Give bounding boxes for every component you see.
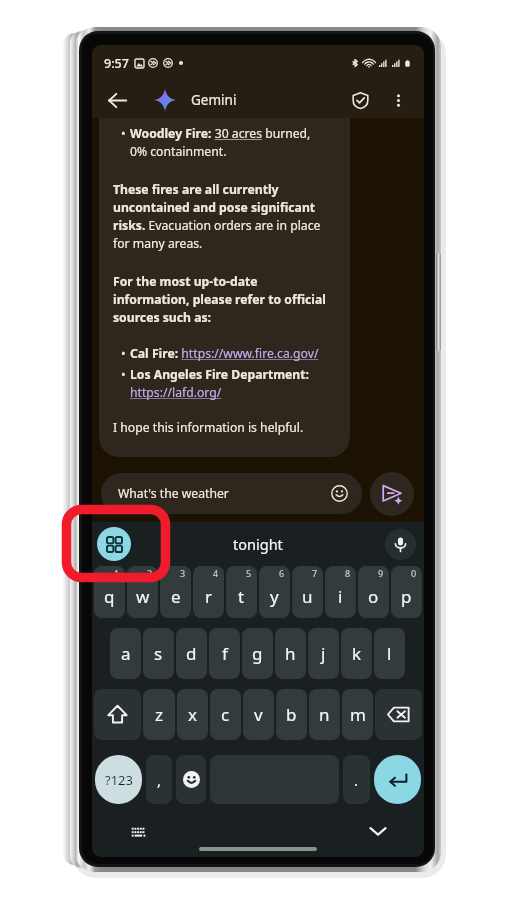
staticText: 1 (114, 567, 120, 579)
button[interactable]: Back (100, 83, 134, 117)
button[interactable]: v (243, 689, 274, 740)
staticText: • (121, 125, 126, 142)
staticText: 6 (279, 567, 285, 579)
staticText: u (302, 585, 313, 608)
staticText: 3 (180, 567, 186, 579)
staticText: n (319, 703, 330, 726)
button[interactable]: 1 (94, 566, 125, 618)
staticText: c (221, 703, 230, 726)
staticText: • (121, 345, 126, 362)
button[interactable]: . (343, 755, 370, 804)
staticText: Woodley Fire: 30 acres burned, 0% contai… (130, 125, 329, 160)
button[interactable]: s (143, 628, 174, 679)
button[interactable]: n (309, 689, 340, 740)
staticText: k (352, 642, 362, 665)
button[interactable]: 4 (193, 566, 224, 618)
staticText: Cal Fire: https://www.fire.ca.gov/ (130, 345, 319, 362)
staticText: I hope this information is helpful. (113, 419, 304, 436)
staticText: 5 (246, 567, 252, 579)
button[interactable]: j (308, 628, 339, 679)
staticText: j (321, 642, 326, 665)
staticText: 9 (378, 567, 384, 579)
staticText: h (285, 642, 296, 665)
staticText: l (387, 642, 392, 665)
button[interactable]: 2 (127, 566, 158, 618)
staticText: t (238, 585, 245, 608)
staticText: ?123 (105, 771, 133, 789)
button[interactable]: 5 (226, 566, 257, 618)
button[interactable]: Hide keyboard (366, 819, 390, 843)
staticText: z (155, 703, 163, 726)
staticText: w (136, 585, 150, 608)
staticText: i (338, 585, 343, 608)
staticText: a (121, 642, 131, 665)
staticText: 9:57 (104, 55, 129, 72)
button[interactable]: x (177, 689, 208, 740)
button[interactable]: Backspace (375, 689, 422, 740)
staticText: 7 (312, 567, 318, 579)
button[interactable]: Privacy shield (343, 83, 377, 117)
button[interactable]: a (110, 628, 141, 679)
button[interactable]: b (276, 689, 307, 740)
button[interactable]: 9 (358, 566, 389, 618)
button[interactable]: Emoji (176, 755, 206, 804)
staticText: • (121, 366, 126, 383)
button[interactable]: m (342, 689, 373, 740)
button[interactable]: Apps (97, 527, 131, 561)
button[interactable]: Shift (94, 689, 141, 740)
staticText: v (254, 703, 263, 726)
button[interactable]: c (210, 689, 241, 740)
staticText: 4 (213, 567, 219, 579)
staticText: d (186, 642, 197, 665)
button[interactable]: z (143, 689, 175, 740)
button[interactable]: 3 (160, 566, 191, 618)
button[interactable]: Send (370, 472, 414, 516)
staticText: b (286, 703, 297, 726)
staticText: m (350, 703, 366, 726)
button[interactable]: d (176, 628, 207, 679)
staticText: q (104, 585, 115, 608)
staticText: o (368, 585, 379, 608)
staticText: , (157, 770, 162, 790)
button[interactable]: Change keyboard (126, 819, 150, 843)
staticText: p (401, 585, 412, 608)
button[interactable]: More options (383, 85, 413, 115)
staticText: Los Angeles Fire Department: https://laf… (130, 366, 329, 401)
staticText: For the most up-to-date information, ple… (113, 273, 329, 326)
button[interactable]: k (341, 628, 372, 679)
staticText: These fires are all currently uncontaine… (113, 181, 329, 252)
staticText: g (252, 642, 263, 665)
button[interactable]: Enter (374, 755, 421, 804)
staticText: x (188, 703, 197, 726)
button[interactable]: , (146, 755, 172, 804)
staticText: 0 (411, 567, 417, 579)
staticText: f (222, 642, 228, 665)
staticText: y (270, 585, 279, 608)
button[interactable]: f (209, 628, 240, 679)
button[interactable]: g (242, 628, 273, 679)
staticText: e (171, 585, 181, 608)
staticText: 8 (345, 567, 351, 579)
button[interactable]: Voice input (385, 529, 416, 560)
staticText: 2 (147, 567, 153, 579)
staticText: s (154, 642, 163, 665)
button[interactable]: h (275, 628, 306, 679)
button[interactable]: l (374, 628, 405, 679)
button[interactable]: ?123 (95, 755, 142, 804)
staticText: tonight (233, 534, 283, 554)
button[interactable]: 8 (325, 566, 356, 618)
button[interactable]: What's the weather (101, 473, 362, 514)
button[interactable]: 6 (259, 566, 290, 618)
button[interactable]: 7 (292, 566, 323, 618)
staticText: . (354, 770, 359, 790)
staticText: What's the weather (118, 485, 229, 502)
staticText: r (205, 585, 213, 608)
staticText: Gemini (191, 91, 237, 109)
button[interactable]: 0 (391, 566, 422, 618)
